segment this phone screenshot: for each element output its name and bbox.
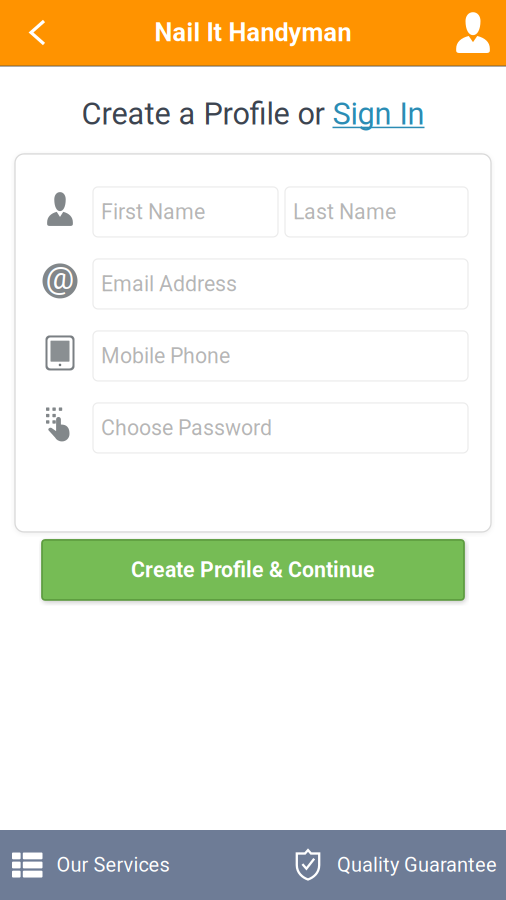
staticText: Email Address [101,271,237,296]
button[interactable]: Back [0,0,76,65]
staticText: Sign In [332,96,424,132]
staticText: Our Services [56,853,169,877]
staticText: Mobile Phone [101,343,230,368]
button[interactable]: Quality Guarantee [253,830,506,900]
staticText: Last Name [293,199,396,224]
staticText: Create Profile & Continue [131,557,375,582]
staticText: Nail It Handyman [154,18,351,47]
button[interactable]: Account [440,0,506,65]
button[interactable]: Our Services [0,830,253,900]
staticText: @ [45,259,74,297]
staticText: First Name [101,199,205,224]
button[interactable]: Create Profile & Continue [42,540,464,600]
staticText: Quality Guarantee [337,853,497,877]
staticText: Create a Profile or [81,96,332,132]
staticText: Choose Password [101,415,272,440]
